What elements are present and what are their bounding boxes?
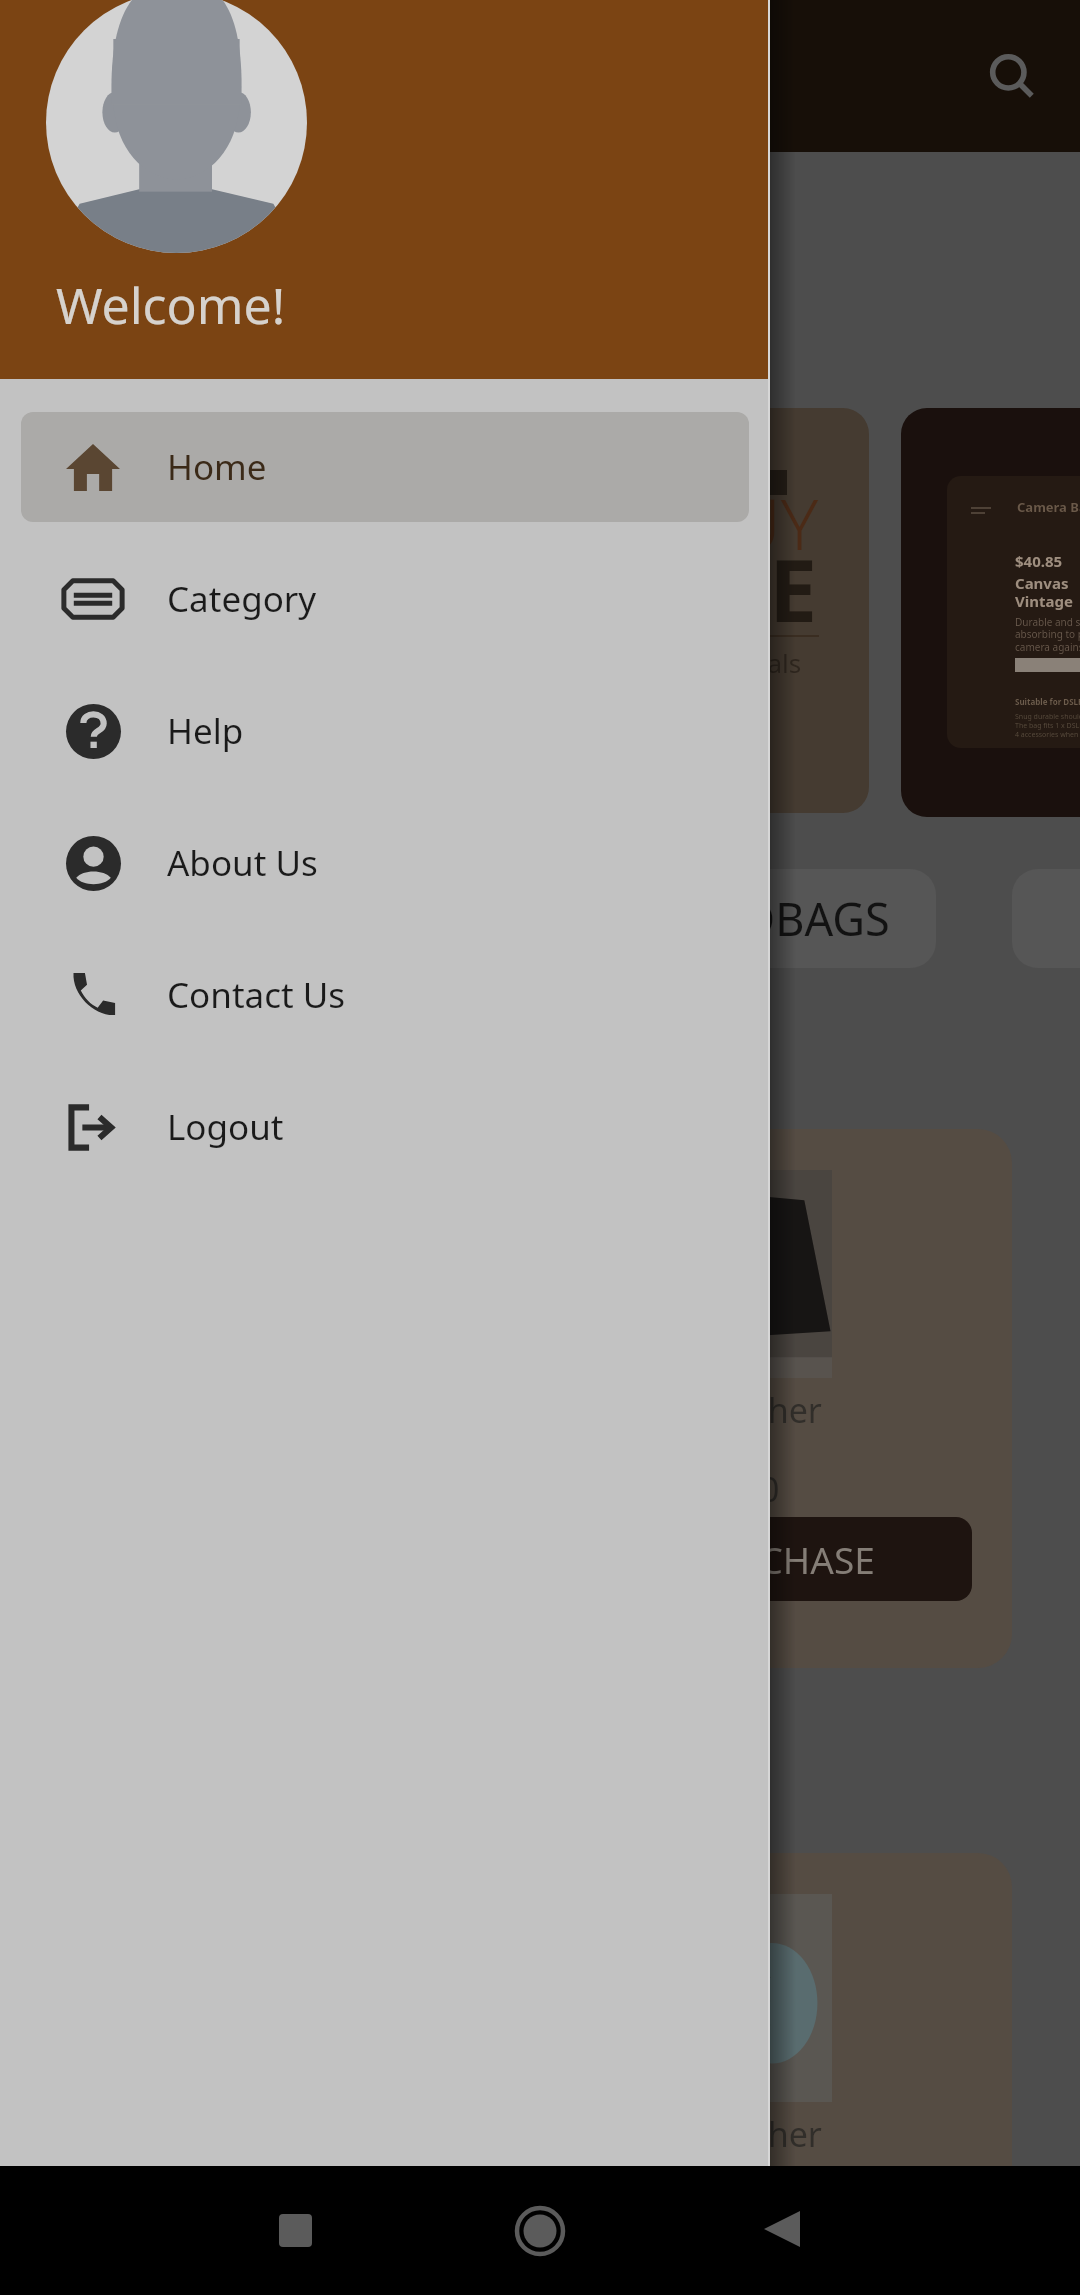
button[interactable]: Home <box>21 412 749 522</box>
button[interactable]: Search <box>972 36 1052 116</box>
button[interactable]: Logout <box>21 1072 749 1182</box>
staticText: BUY <box>686 475 819 570</box>
staticText: Suitable for DSLR <box>1015 696 1080 707</box>
button[interactable]: Back <box>764 2211 800 2247</box>
button[interactable]: HANDBAGS <box>600 869 936 968</box>
button[interactable]: Camera Bag <box>901 408 1080 817</box>
button[interactable]: Recents <box>279 2214 312 2247</box>
button[interactable]: About Us <box>21 808 749 918</box>
staticText: About Us <box>167 839 318 887</box>
button[interactable]: PURCHASE <box>104 2241 972 2295</box>
staticText: Welcome! <box>56 271 286 339</box>
staticText: $40.85 <box>1015 551 1063 571</box>
button[interactable]: Help <box>21 676 749 786</box>
staticText: PURCHASE <box>687 1534 875 1584</box>
staticText: Snug durable shoulder strap The bag fits… <box>1015 712 1080 739</box>
staticText: Category <box>167 575 317 623</box>
staticText: Premium Leather <box>544 2111 822 2157</box>
staticText: Logout <box>167 1103 284 1151</box>
button[interactable]: Home <box>515 2206 565 2256</box>
button[interactable]: PURCHASE <box>104 1517 972 1601</box>
staticText: $19.00 <box>673 1466 780 1512</box>
button[interactable]: Premium Leather <box>68 1129 1012 1668</box>
staticText: HANDBAGS <box>646 888 890 949</box>
staticText: Premium Leather <box>544 1387 822 1433</box>
staticText: Exclusive deals <box>620 645 802 680</box>
staticText: Durable and shock absorbing to protect c… <box>1015 615 1080 654</box>
staticText: SALE <box>614 530 818 647</box>
staticText: Home <box>167 443 267 491</box>
button[interactable]: Premium Leather <box>68 1853 1012 2295</box>
button[interactable]: BUY <box>465 408 869 813</box>
staticText: Camera Bag <box>1017 498 1080 516</box>
button[interactable]: Category <box>21 544 749 654</box>
staticText: Canvas Vintage <box>1015 573 1073 612</box>
staticText: $19.00 <box>673 2190 780 2236</box>
staticText: Help <box>167 707 244 755</box>
staticText: Contact Us <box>167 971 346 1019</box>
button[interactable]: Contact Us <box>21 940 749 1050</box>
